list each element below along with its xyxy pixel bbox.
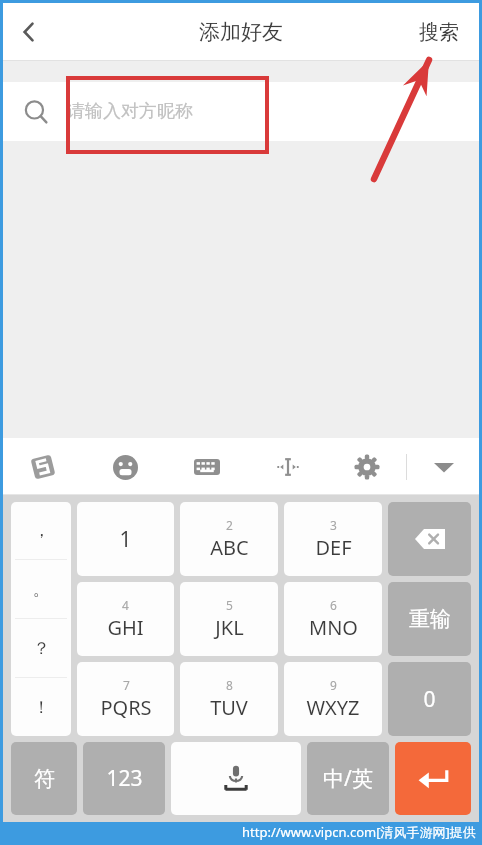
staticText: 中/英 — [323, 764, 373, 793]
staticText: 请输入对方昵称 — [67, 100, 193, 123]
staticText: 9 — [330, 677, 337, 693]
staticText: TUV — [210, 694, 248, 721]
button[interactable]: 9 — [284, 662, 382, 736]
staticText: 5 — [226, 597, 233, 613]
staticText: http://www.vipcn.com[清风手游网]提供 — [242, 823, 476, 841]
staticText: 1 — [119, 525, 132, 554]
button[interactable]: 123 — [83, 742, 165, 815]
button[interactable]: ？ — [11, 619, 71, 677]
staticText: 6 — [330, 597, 337, 613]
staticText: GHI — [107, 614, 144, 641]
button[interactable]: Enter — [395, 742, 471, 815]
button[interactable]: 0 — [388, 662, 471, 736]
button[interactable]: ！ — [11, 678, 71, 736]
button[interactable]: 3 — [284, 502, 382, 576]
staticText: DEF — [315, 534, 352, 561]
staticText: 重输 — [409, 606, 451, 632]
button[interactable]: 4 — [77, 582, 174, 656]
staticText: 搜索 — [419, 20, 459, 45]
staticText: MNO — [309, 614, 358, 641]
button[interactable]: 。 — [11, 560, 71, 618]
staticText: 3 — [330, 517, 337, 533]
button[interactable]: Move cursor — [268, 447, 308, 487]
button[interactable]: 8 — [180, 662, 278, 736]
button[interactable]: Settings — [347, 447, 387, 487]
staticText: PQRS — [100, 694, 152, 721]
button[interactable]: 请输入对方昵称 — [3, 82, 479, 141]
button[interactable]: 6 — [284, 582, 382, 656]
button[interactable]: Backspace — [388, 502, 471, 576]
button[interactable]: Hide keyboard — [425, 448, 463, 486]
button[interactable]: 7 — [77, 662, 174, 736]
staticText: WXYZ — [306, 694, 360, 721]
button[interactable]: 重输 — [388, 582, 471, 656]
staticText: 4 — [122, 597, 129, 613]
staticText: 0 — [423, 685, 436, 714]
staticText: 8 — [226, 677, 233, 693]
staticText: 123 — [106, 764, 143, 793]
staticText: ！ — [33, 697, 50, 718]
staticText: 。 — [33, 579, 50, 600]
staticText: JKL — [215, 614, 244, 641]
button[interactable]: 中/英 — [307, 742, 389, 815]
staticText: 符 — [34, 766, 55, 792]
button[interactable]: 5 — [180, 582, 278, 656]
button[interactable]: Sogou input — [23, 447, 63, 487]
button[interactable]: Back — [3, 6, 55, 58]
staticText: ， — [33, 520, 50, 541]
button[interactable]: ， — [11, 502, 71, 559]
button[interactable]: Space / Voice input — [171, 742, 301, 815]
button[interactable]: Keyboard layout — [187, 447, 227, 487]
staticText: 7 — [123, 677, 130, 693]
button[interactable]: 符 — [11, 742, 77, 815]
button[interactable]: Emoji — [105, 447, 145, 487]
button[interactable]: 2 — [180, 502, 278, 576]
button[interactable]: 1 — [77, 502, 174, 576]
staticText: 添加好友 — [199, 19, 283, 45]
staticText: 2 — [226, 517, 233, 533]
staticText: ？ — [33, 638, 50, 659]
staticText: ABC — [210, 534, 249, 561]
button[interactable]: 搜索 — [413, 14, 465, 51]
